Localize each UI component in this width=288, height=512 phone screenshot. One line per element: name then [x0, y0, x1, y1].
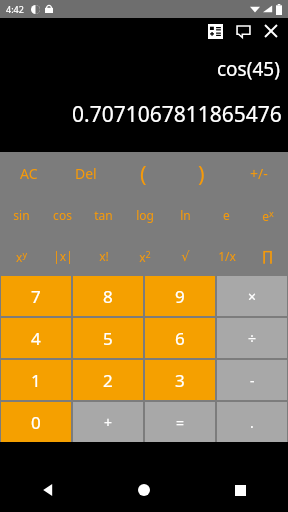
button[interactable]: 8 [73, 276, 143, 316]
staticText: e [223, 207, 230, 223]
staticText: 2 [103, 369, 113, 392]
staticText: xy [16, 248, 27, 265]
staticText: 4 [31, 327, 41, 350]
button[interactable]: |x| [42, 236, 83, 276]
button[interactable]: 9 [145, 276, 215, 316]
button[interactable]: tan [83, 194, 124, 236]
button[interactable]: cos [42, 194, 83, 236]
button[interactable]: sin [0, 194, 42, 236]
button[interactable]: AC [0, 152, 57, 194]
button[interactable]: √ [165, 236, 206, 276]
button[interactable]: x! [83, 236, 124, 276]
staticText: x! [99, 248, 109, 264]
button[interactable]: log [124, 194, 165, 236]
button[interactable]: Recents [192, 468, 288, 512]
button[interactable]: 3 [145, 360, 215, 400]
staticText: × [248, 287, 257, 306]
button[interactable]: ) [172, 152, 230, 194]
staticText: Del [75, 164, 97, 183]
button[interactable]: 1/x [206, 236, 247, 276]
staticText: 9 [175, 285, 185, 308]
staticText: x2 [139, 248, 151, 265]
button[interactable]: e [206, 194, 247, 236]
staticText: cos [53, 207, 72, 223]
staticText: 1 [31, 369, 41, 392]
staticText: cos(45) [217, 56, 280, 82]
staticText: log [136, 207, 154, 223]
staticText: 6 [175, 327, 185, 350]
staticText: 4:42 [6, 3, 24, 15]
button[interactable]: Del [57, 152, 114, 194]
button[interactable]: Back [0, 468, 96, 512]
staticText: sin [13, 207, 30, 223]
button[interactable]: - [217, 360, 287, 400]
staticText: ( [140, 158, 147, 188]
button[interactable]: x2 [124, 236, 165, 276]
button[interactable]: 2 [73, 360, 143, 400]
staticText: = [176, 413, 185, 432]
button[interactable]: 1 [1, 360, 71, 400]
staticText: 5 [103, 327, 113, 350]
button[interactable]: Home [96, 468, 192, 512]
button[interactable]: 5 [73, 318, 143, 358]
button[interactable]: Messages [230, 18, 256, 44]
button[interactable]: ln [165, 194, 206, 236]
button[interactable]: 0 [1, 402, 71, 442]
staticText: 7 [31, 285, 41, 308]
button[interactable]: 4 [1, 318, 71, 358]
staticText: |x| [53, 248, 73, 264]
button[interactable]: = [145, 402, 215, 442]
staticText: ∏ [262, 248, 273, 264]
button[interactable]: ∏ [247, 236, 288, 276]
button[interactable]: Close [258, 18, 284, 44]
staticText: ex [262, 207, 274, 224]
staticText: 0.7071067811865476 [72, 100, 282, 129]
button[interactable]: ex [247, 194, 288, 236]
staticText: √ [181, 249, 190, 264]
button[interactable]: × [217, 276, 287, 316]
button[interactable]: + [73, 402, 143, 442]
button[interactable]: ( [114, 152, 172, 194]
staticText: 1/x [218, 248, 236, 264]
button[interactable]: 6 [145, 318, 215, 358]
staticText: - [250, 371, 255, 390]
staticText: ) [198, 158, 205, 188]
staticText: ÷ [248, 329, 257, 348]
staticText: 3 [175, 369, 185, 392]
button[interactable]: 7 [1, 276, 71, 316]
button[interactable]: xy [0, 236, 42, 276]
staticText: . [250, 413, 254, 432]
button[interactable]: Keypad [202, 18, 228, 44]
staticText: + [104, 413, 113, 432]
staticText: 0 [31, 411, 41, 434]
staticText: ln [180, 207, 191, 223]
button[interactable]: ÷ [217, 318, 287, 358]
staticText: 8 [103, 285, 113, 308]
staticText: tan [94, 207, 113, 223]
staticText: AC [20, 164, 38, 183]
staticText: +/- [250, 164, 268, 183]
button[interactable]: +/- [230, 152, 288, 194]
